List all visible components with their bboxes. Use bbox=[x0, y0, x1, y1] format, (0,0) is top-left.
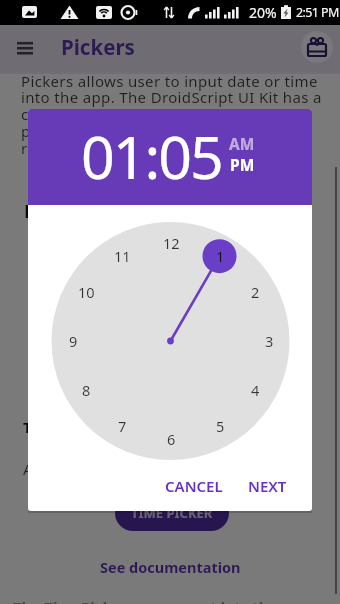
staticText: required date or time value easily. bbox=[21, 138, 273, 158]
button[interactable]: See documentation bbox=[60, 552, 280, 582]
button[interactable]: NEXT bbox=[235, 468, 299, 504]
staticText: Pickers bbox=[61, 33, 135, 61]
staticText: 01:05 bbox=[81, 116, 222, 196]
staticText: Time Picker bbox=[23, 417, 111, 437]
button[interactable] bbox=[9, 38, 41, 58]
staticText: 20% bbox=[249, 3, 277, 22]
staticText: 10 bbox=[78, 282, 95, 302]
button[interactable]: CANCEL bbox=[154, 468, 234, 504]
button[interactable]: AM bbox=[220, 133, 264, 153]
staticText: NEXT bbox=[248, 476, 287, 496]
staticText: TIME PICKER bbox=[131, 504, 213, 522]
staticText: pickers which can be used to select a bbox=[21, 121, 294, 141]
staticText: 2:51 PM bbox=[296, 4, 339, 21]
staticText: 6 bbox=[167, 429, 176, 449]
staticText: into the app. The DroidScript UI Kit has… bbox=[21, 87, 322, 107]
staticText: 11 bbox=[114, 246, 131, 266]
staticText: 12 bbox=[163, 233, 180, 253]
button[interactable] bbox=[301, 31, 333, 63]
button[interactable]: PM bbox=[220, 154, 264, 174]
staticText: See documentation bbox=[100, 557, 241, 577]
staticText: A basic time picker dialog. bbox=[23, 459, 216, 479]
staticText: 7 bbox=[118, 416, 127, 436]
button[interactable]: TIME PICKER bbox=[115, 495, 229, 531]
staticText: 5 bbox=[216, 416, 225, 436]
staticText: 8 bbox=[82, 380, 91, 400]
staticText: 9 bbox=[69, 331, 78, 351]
staticText: AM bbox=[229, 133, 255, 153]
staticText: 1 bbox=[216, 246, 225, 266]
staticText: CANCEL bbox=[165, 476, 223, 496]
staticText: 2 bbox=[251, 282, 260, 302]
staticText: PM bbox=[230, 154, 255, 174]
staticText: custom picker example: date and time bbox=[21, 104, 303, 124]
staticText: The TimePicker component lets the user s… bbox=[13, 597, 340, 604]
staticText: Pickers allows user to input date or tim… bbox=[21, 71, 318, 91]
staticText: Example bbox=[24, 199, 101, 224]
staticText: 3 bbox=[265, 331, 274, 351]
staticText: 4 bbox=[251, 380, 260, 400]
